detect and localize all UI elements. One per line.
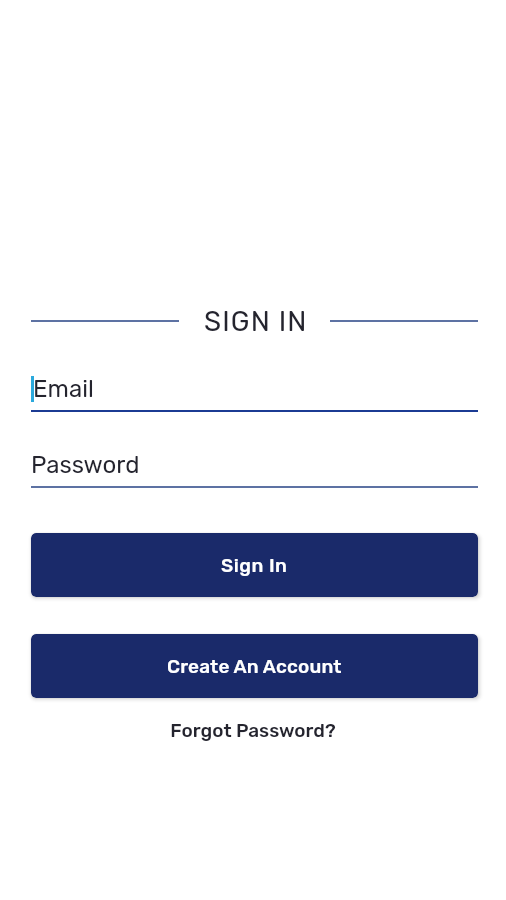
button[interactable]: Sign In <box>31 533 478 597</box>
staticText: SIGN IN <box>204 305 308 338</box>
button[interactable]: Password <box>31 446 478 488</box>
staticText: Create An Account <box>167 655 342 678</box>
button[interactable]: Email <box>31 370 478 412</box>
button[interactable]: Create An Account <box>31 634 478 698</box>
button[interactable]: Forgot Password? <box>160 713 346 747</box>
staticText: Password <box>31 451 140 479</box>
staticText: Sign In <box>221 554 288 577</box>
staticText: Email <box>33 375 94 403</box>
